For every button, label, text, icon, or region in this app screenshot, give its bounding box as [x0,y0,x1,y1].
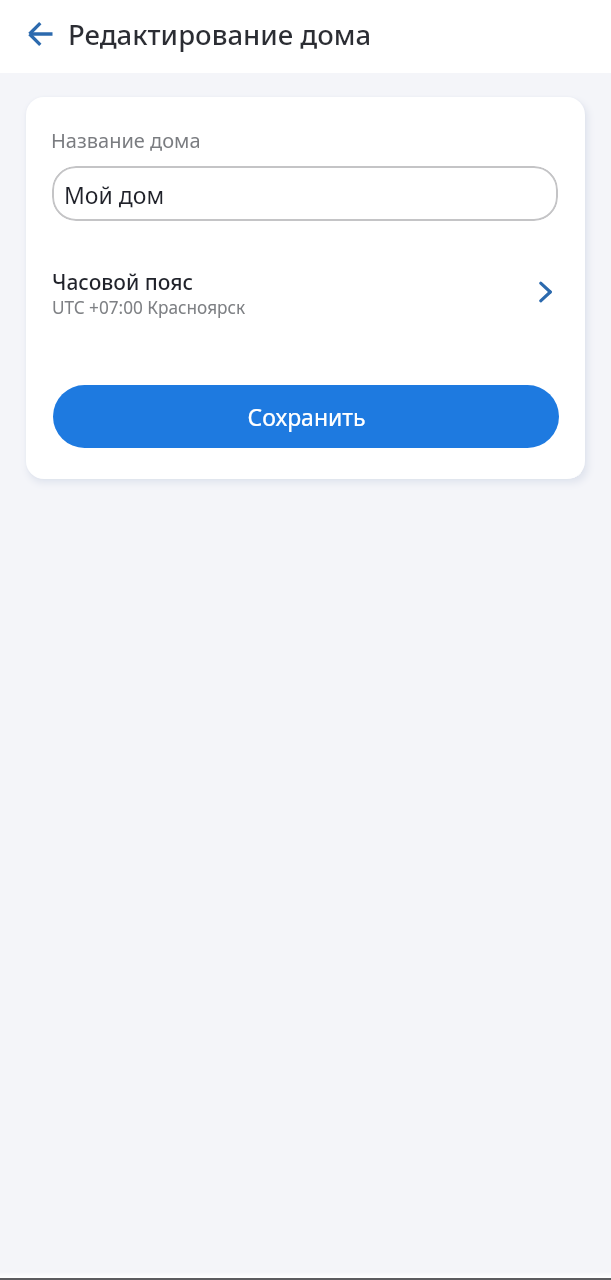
staticText: Часовой пояс [52,268,194,297]
staticText: Название дома [51,127,201,154]
button[interactable]: Часовой пояс [26,258,585,330]
staticText: UTC +07:00 Красноярск [52,296,246,319]
button[interactable]: Мой дом [52,166,558,221]
button[interactable]: Сохранить [53,385,559,448]
staticText: Сохранить [247,401,366,432]
button[interactable]: Back [17,10,65,58]
staticText: Мой дом [64,179,165,210]
staticText: Редактирование дома [68,16,372,53]
other: Open time zone picker [529,275,563,309]
